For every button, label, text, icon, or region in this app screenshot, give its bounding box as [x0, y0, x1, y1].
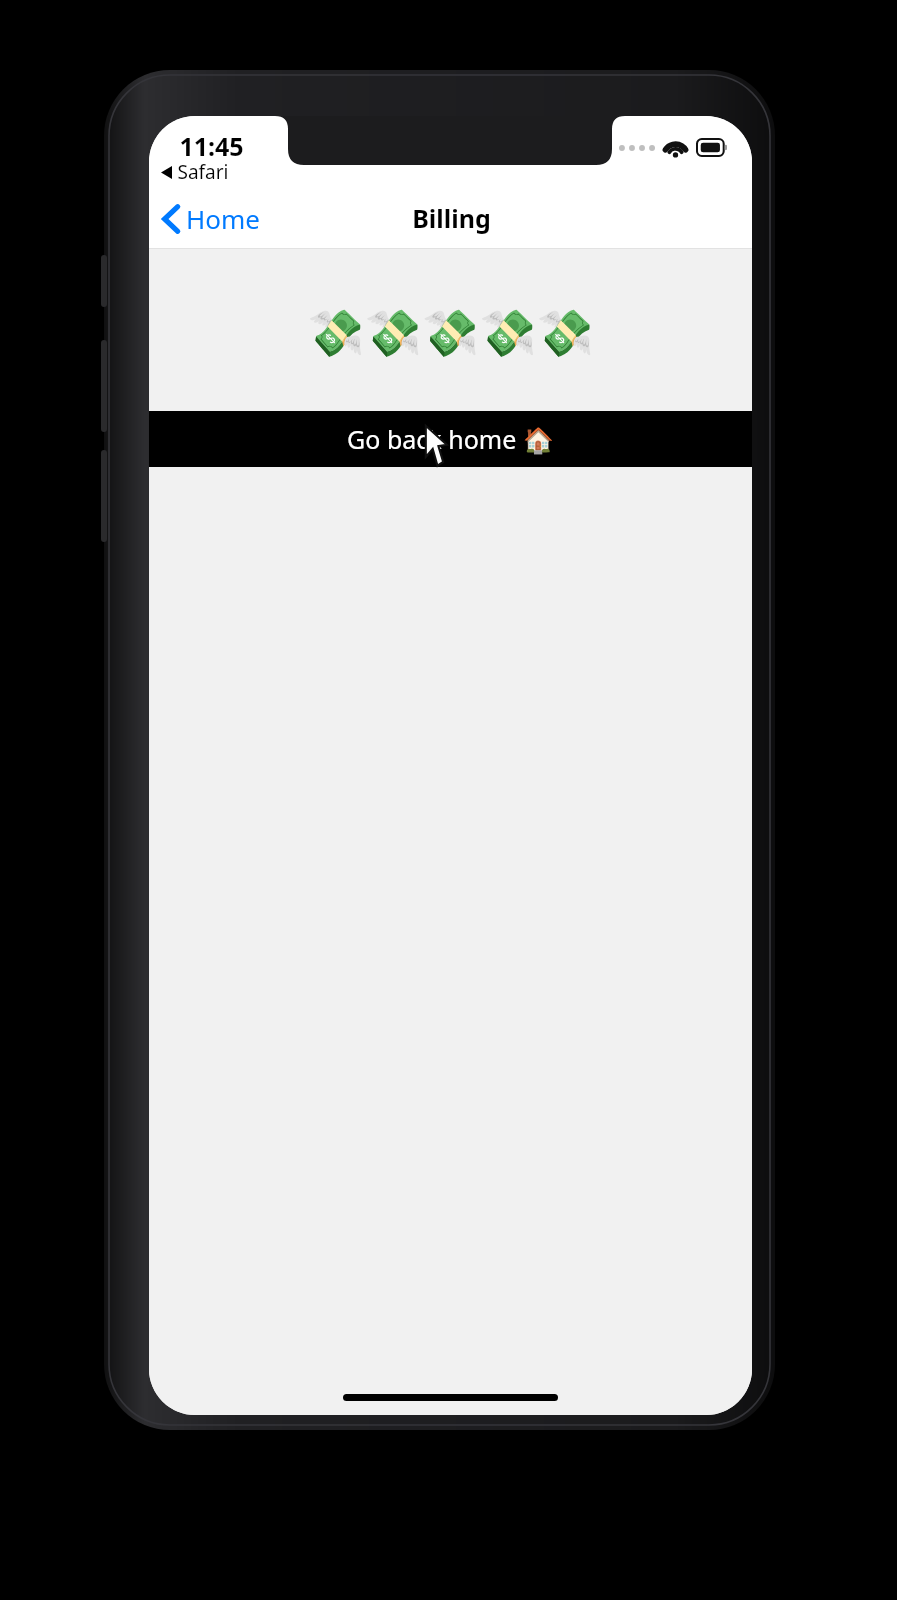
staticText: Home — [186, 201, 260, 236]
staticText: Go back home 🏠 — [347, 422, 554, 456]
button[interactable]: Go back home 🏠 — [149, 411, 752, 467]
staticText: 💸💸💸💸💸 — [307, 306, 594, 360]
staticText: Billing — [412, 201, 491, 235]
staticText: 11:45 — [179, 129, 244, 163]
staticText: Safari — [177, 159, 229, 185]
other: Volume down — [101, 450, 107, 542]
other: Silent switch — [101, 255, 107, 307]
other: Volume up — [101, 340, 107, 432]
button[interactable]: Home — [149, 195, 270, 242]
